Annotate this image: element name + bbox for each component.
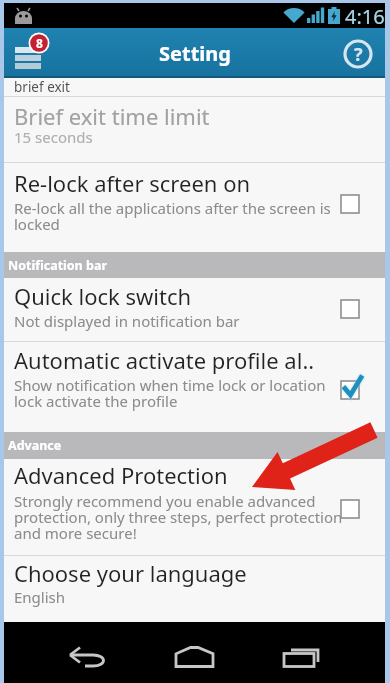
staticText: ? [354, 42, 363, 67]
staticText: Setting [159, 40, 231, 67]
staticText: Re-lock all the applications after the s… [14, 198, 331, 234]
staticText: 8 [36, 35, 43, 51]
staticText: Brief exit time limit [14, 101, 210, 131]
button[interactable]: Brief exit time limit [0, 97, 390, 163]
button[interactable] [66, 640, 108, 672]
staticText: Not displayed in notification bar [14, 311, 240, 331]
staticText: Quick lock switch [14, 281, 192, 311]
button[interactable]: ? [343, 39, 373, 69]
staticText: Choose your language [14, 558, 247, 588]
staticText: brief exit [14, 78, 70, 96]
staticText: Strongly recommend you enable advanced p… [14, 491, 343, 543]
staticText: Automatic activate profile al.. [14, 345, 315, 375]
button[interactable]: Automatic activate profile al.. [0, 342, 390, 432]
staticText: Re-lock after screen on [14, 168, 251, 198]
staticText: English [14, 587, 66, 607]
button[interactable]: Advanced Protection [0, 459, 390, 556]
button[interactable]: Re-lock after screen on [0, 163, 390, 252]
staticText: Show notification when time lock or loca… [14, 375, 326, 411]
button[interactable]: Choose your language [0, 556, 390, 622]
staticText: Advanced Protection [14, 460, 228, 490]
button[interactable] [172, 640, 218, 672]
button[interactable]: 8 [13, 30, 55, 72]
staticText: 15 seconds [14, 127, 93, 147]
staticText: Notification bar [8, 257, 107, 274]
staticText: Advance [8, 437, 62, 454]
button[interactable]: Quick lock switch [0, 278, 390, 342]
button[interactable] [280, 640, 322, 672]
staticText: 4:16 [345, 3, 385, 28]
